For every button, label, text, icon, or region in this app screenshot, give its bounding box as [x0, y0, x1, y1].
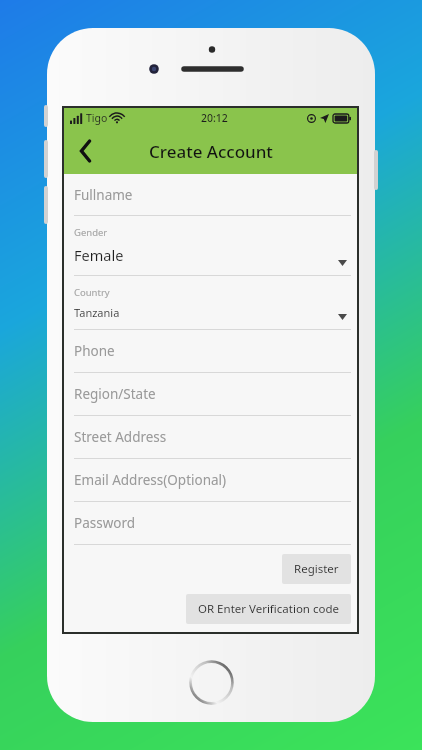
- staticText: OR Enter Verification code: [198, 601, 339, 617]
- button[interactable]: Phone: [64, 330, 357, 372]
- button[interactable]: Region/State: [64, 373, 357, 415]
- staticText: Tanzania: [74, 305, 120, 320]
- button[interactable]: Back: [64, 129, 108, 173]
- staticText: Phone: [74, 342, 115, 360]
- staticText: Password: [74, 514, 136, 532]
- button[interactable]: OR Enter Verification code: [186, 594, 351, 624]
- button[interactable]: Email Address(Optional): [64, 459, 357, 501]
- staticText: Fullname: [74, 186, 133, 204]
- staticText: Female: [74, 245, 124, 265]
- staticText: Tigo: [86, 111, 108, 125]
- button[interactable]: Password: [64, 502, 357, 544]
- staticText: Region/State: [74, 385, 156, 403]
- staticText: 20:12: [201, 111, 228, 125]
- button[interactable]: Gender: [64, 216, 357, 275]
- button[interactable]: Street Address: [64, 416, 357, 458]
- staticText: Country: [74, 286, 110, 299]
- button[interactable]: Country: [64, 276, 357, 329]
- staticText: Email Address(Optional): [74, 471, 227, 489]
- staticText: Register: [294, 561, 339, 577]
- button[interactable]: Fullname: [64, 174, 357, 215]
- staticText: Gender: [74, 226, 108, 239]
- button[interactable]: Register: [282, 554, 351, 584]
- button[interactable]: Home: [189, 660, 234, 705]
- staticText: Street Address: [74, 428, 167, 446]
- staticText: Create Account: [149, 140, 273, 163]
